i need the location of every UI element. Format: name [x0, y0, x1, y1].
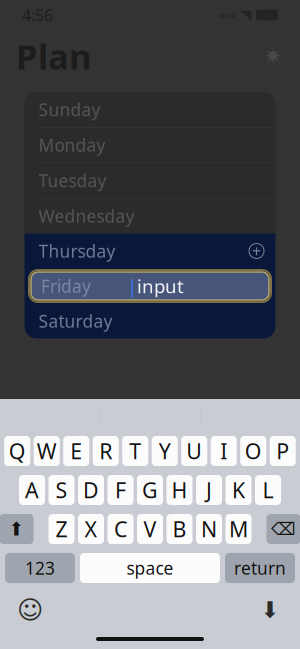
button[interactable]: S — [48, 475, 74, 505]
staticText: | — [127, 274, 137, 298]
staticText: X — [84, 515, 97, 543]
button[interactable]: M — [225, 514, 251, 544]
button[interactable]: D — [78, 475, 104, 505]
button[interactable]: Delete — [266, 514, 300, 544]
button[interactable]: P — [270, 436, 296, 466]
staticText: return — [234, 556, 286, 579]
staticText: + — [252, 240, 261, 262]
staticText: F — [115, 476, 126, 504]
staticText: H — [171, 476, 187, 504]
staticText: 4:56 — [22, 4, 53, 26]
button[interactable]: return — [225, 553, 295, 583]
staticText: ✷ — [264, 44, 282, 68]
staticText: 123 — [25, 556, 55, 579]
button[interactable]: H — [166, 475, 192, 505]
staticText: P — [276, 437, 289, 465]
button[interactable]: F — [107, 475, 133, 505]
button[interactable]: Y — [152, 436, 178, 466]
staticText: Friday — [38, 274, 88, 297]
button[interactable]: space — [80, 553, 220, 583]
staticText: A — [25, 476, 39, 504]
staticText: Friday — [41, 274, 91, 297]
staticText: ⬇ — [260, 597, 279, 623]
staticText: ⬆ — [8, 518, 24, 540]
staticText: S — [55, 476, 67, 504]
staticText: Thursday — [38, 239, 115, 262]
staticText: ⌫ — [271, 519, 296, 539]
staticText: C — [114, 515, 127, 543]
button[interactable]: Settings — [258, 41, 288, 71]
staticText: W — [37, 437, 57, 465]
staticText: Z — [55, 515, 67, 543]
staticText: Q — [9, 437, 26, 465]
staticText: M — [229, 515, 248, 543]
button[interactable]: B — [166, 514, 192, 544]
button[interactable]: Q — [4, 436, 30, 466]
button[interactable]: W — [34, 436, 60, 466]
staticText: space — [126, 556, 173, 579]
button[interactable]: C — [107, 514, 133, 544]
staticText: R — [99, 437, 112, 465]
staticText: E — [70, 437, 82, 465]
staticText: Wednesday — [38, 204, 134, 227]
staticText: U — [186, 437, 202, 465]
button[interactable]: T — [122, 436, 148, 466]
staticText: ◥ — [241, 7, 251, 22]
button[interactable]: J — [196, 475, 222, 505]
staticText: G — [142, 476, 158, 504]
staticText: N — [201, 515, 217, 543]
button[interactable]: X — [78, 514, 104, 544]
staticText: V — [143, 515, 156, 543]
button[interactable]: Dictation — [254, 596, 286, 624]
staticText: Plan — [16, 33, 92, 79]
staticText: ▪▪▪ — [218, 10, 236, 20]
button[interactable]: G — [137, 475, 163, 505]
button[interactable]: A — [19, 475, 45, 505]
button[interactable]: Add item — [243, 238, 269, 264]
staticText: D — [83, 476, 99, 504]
button[interactable]: V — [137, 514, 163, 544]
staticText: O — [245, 437, 262, 465]
button[interactable]: 123 — [5, 553, 75, 583]
staticText: K — [232, 476, 245, 504]
staticText: Y — [159, 437, 171, 465]
staticText: I — [220, 437, 227, 465]
button[interactable]: E — [63, 436, 89, 466]
button[interactable]: O — [240, 436, 266, 466]
button[interactable]: R — [93, 436, 119, 466]
staticText: J — [206, 476, 212, 504]
staticText: input — [137, 274, 184, 298]
staticText: B — [172, 515, 186, 543]
button[interactable]: U — [181, 436, 207, 466]
button[interactable]: K — [225, 475, 251, 505]
staticText: T — [129, 437, 141, 465]
staticText: Saturday — [38, 309, 112, 332]
button[interactable]: Shift — [0, 514, 33, 544]
button[interactable]: Emoji — [14, 596, 46, 624]
button[interactable]: N — [196, 514, 222, 544]
staticText: L — [262, 476, 273, 504]
staticText: Tuesday — [38, 169, 106, 192]
button[interactable]: Z — [48, 514, 74, 544]
staticText: Sunday — [38, 98, 100, 121]
button[interactable]: I — [211, 436, 237, 466]
staticText: Monday — [38, 133, 105, 156]
button[interactable]: L — [255, 475, 281, 505]
staticText: ☺ — [17, 596, 43, 624]
